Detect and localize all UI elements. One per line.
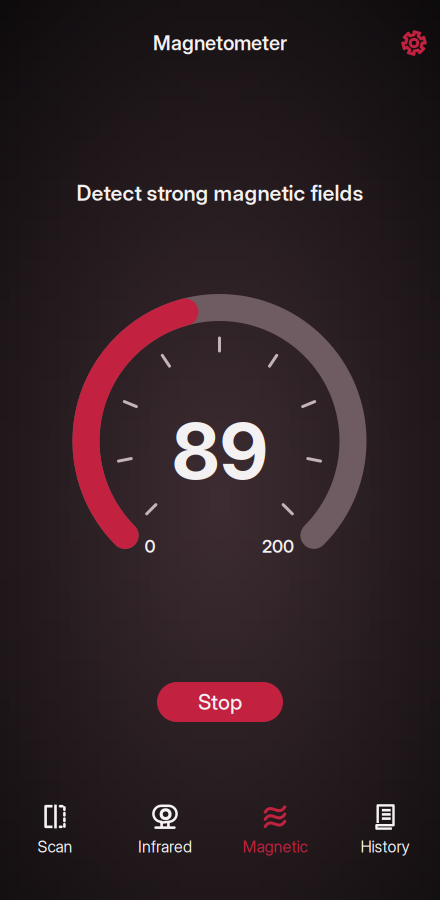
staticText: Magnetometer [153,31,287,55]
staticText: History [360,837,409,856]
button[interactable]: History [330,790,440,900]
staticText: Detect strong magnetic fields [76,180,363,206]
button[interactable]: Magnetic [220,790,330,900]
staticText: 0 [144,536,155,557]
button[interactable]: Scan [0,790,110,900]
staticText: Scan [37,837,72,856]
staticText: 200 [262,536,294,557]
button[interactable]: Stop [157,682,283,722]
button[interactable]: Infrared [110,790,220,900]
staticText: Infrared [138,837,192,856]
staticText: 89 [172,404,268,498]
staticText: Magnetic [242,837,307,856]
staticText: Stop [198,689,242,715]
button[interactable]: Settings [402,21,440,65]
